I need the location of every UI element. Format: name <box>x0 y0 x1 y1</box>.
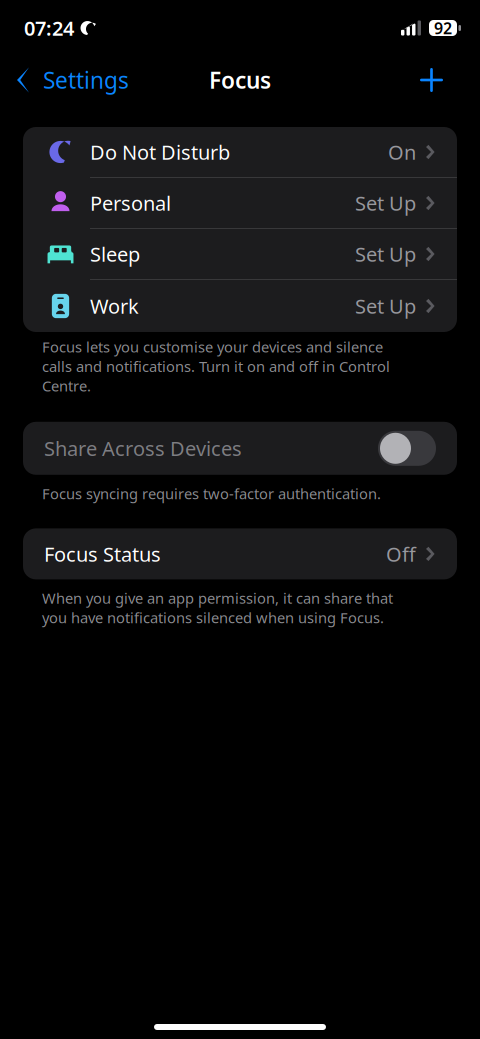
staticText: Do Not Disturb <box>90 139 230 165</box>
staticText: 92 <box>434 17 452 39</box>
button[interactable]: Settings <box>0 56 139 104</box>
staticText: Share Across Devices <box>44 435 242 462</box>
button[interactable]: Do Not Disturb <box>23 127 457 178</box>
staticText: Sleep <box>90 241 140 267</box>
staticText: Personal <box>90 190 171 216</box>
staticText: Settings <box>43 65 129 95</box>
button[interactable]: Work <box>23 280 457 332</box>
staticText: When you give an app permission, it can … <box>42 588 393 627</box>
staticText: On <box>388 139 416 165</box>
staticText: 07:24 <box>24 15 74 41</box>
staticText: Off <box>386 541 416 567</box>
staticText: Work <box>90 293 139 319</box>
button[interactable]: Focus Status <box>23 528 457 579</box>
staticText: Set Up <box>355 241 416 267</box>
staticText: Focus lets you customise your devices an… <box>42 337 390 395</box>
staticText: Focus syncing requires two-factor authen… <box>42 484 381 503</box>
button[interactable]: Sleep <box>23 229 457 280</box>
staticText: Set Up <box>355 293 416 319</box>
button[interactable]: Add Focus <box>404 56 480 104</box>
button[interactable]: Share Across Devices <box>23 422 457 475</box>
staticText: Focus Status <box>44 541 161 567</box>
staticText: Focus <box>209 65 271 95</box>
button[interactable]: Personal <box>23 178 457 229</box>
staticText: Set Up <box>355 190 416 216</box>
